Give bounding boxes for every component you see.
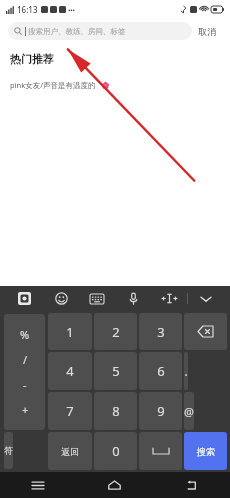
staticText: @ [184, 404, 194, 419]
button[interactable]: Sogou input [6, 286, 43, 311]
button[interactable]: 3 [139, 313, 182, 350]
button[interactable]: Back [153, 472, 230, 498]
button[interactable]: 0 [94, 432, 137, 470]
button[interactable]: 4 [48, 352, 92, 390]
button[interactable]: @ [184, 392, 194, 430]
button[interactable]: Hide keyboard [188, 286, 224, 311]
button[interactable]: . [184, 352, 188, 390]
staticText: 符 [4, 445, 13, 456]
button[interactable]: 搜索用户、教练、房间、标签 [8, 22, 192, 40]
staticText: pink女友/声音是有温度的 [10, 80, 96, 90]
button[interactable]: 搜索 [184, 432, 227, 470]
staticText: 2 [112, 323, 120, 341]
staticText: 6 [157, 362, 165, 380]
button[interactable]: 符 [4, 432, 13, 469]
button[interactable]: pink女友/声音是有温度的 [0, 77, 230, 93]
button[interactable]: 2 [94, 313, 137, 350]
staticText: % [20, 327, 30, 342]
staticText: 返回 [61, 446, 79, 457]
staticText: 取消 [198, 26, 216, 37]
button[interactable]: Move cursor [151, 286, 187, 311]
button[interactable]: 7 [48, 392, 92, 430]
staticText: . [184, 363, 188, 379]
staticText: 8 [112, 402, 120, 420]
staticText: - [23, 377, 27, 392]
staticText: 9 [157, 402, 165, 420]
button[interactable]: Emoji [43, 286, 79, 311]
button[interactable]: 5 [94, 352, 137, 390]
button[interactable]: Backspace [184, 313, 227, 350]
button[interactable]: Recents [0, 472, 76, 498]
staticText: 5 [112, 362, 120, 380]
button[interactable]: 6 [139, 352, 182, 390]
button[interactable]: 取消 [192, 22, 222, 41]
staticText: 16:13 [17, 4, 38, 15]
button[interactable]: 8 [94, 392, 137, 430]
staticText: 搜索用户、教练、房间、标签 [28, 27, 126, 36]
button[interactable]: 9 [139, 392, 182, 430]
staticText: 搜索 [197, 446, 215, 457]
button[interactable]: Voice input [115, 286, 151, 311]
button[interactable]: 1 [48, 313, 92, 350]
staticText: 1 [66, 323, 74, 341]
button[interactable]: 返回 [48, 432, 92, 470]
staticText: / [23, 352, 28, 367]
staticText: 0 [112, 442, 120, 460]
staticText: 3 [157, 323, 165, 341]
staticText: 7 [66, 402, 74, 420]
staticText: 热门推荐 [10, 52, 54, 66]
button[interactable]: % [4, 314, 45, 430]
button[interactable]: Keyboard layout [79, 286, 115, 311]
button[interactable]: Space [139, 432, 182, 470]
staticText: 4 [66, 362, 74, 380]
button[interactable]: Home [76, 472, 153, 498]
staticText: + [22, 402, 29, 417]
